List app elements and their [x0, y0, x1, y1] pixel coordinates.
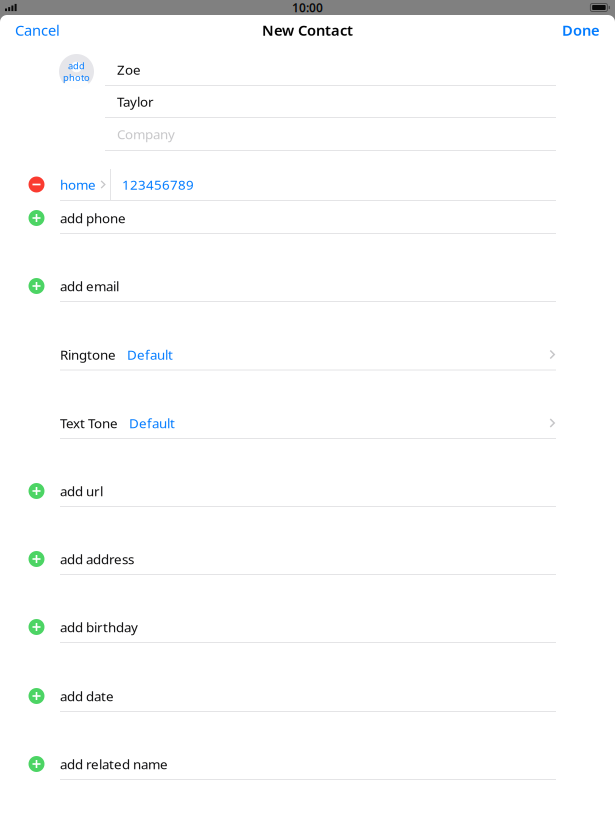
button[interactable]: add date [0, 678, 615, 712]
button[interactable]: Done [558, 13, 604, 47]
staticText: add [68, 59, 85, 72]
staticText: Cancel [15, 20, 60, 40]
staticText: add related name [60, 755, 168, 773]
staticText: photo [63, 71, 90, 84]
staticText: add url [60, 482, 103, 500]
button[interactable]: home [0, 169, 615, 201]
staticText: add email [60, 277, 119, 295]
button[interactable]: add birthday [0, 610, 615, 643]
button[interactable]: add address [0, 542, 615, 575]
staticText: Done [562, 20, 600, 40]
staticText: New Contact [262, 20, 353, 40]
staticText: Default [129, 414, 175, 432]
button[interactable]: Add photo [59, 54, 94, 89]
staticText: 10:00 [292, 0, 323, 15]
button[interactable]: Ringtone [0, 337, 615, 370]
button[interactable]: add url [0, 474, 615, 507]
staticText: Taylor [117, 93, 154, 110]
button[interactable]: add related name [0, 746, 615, 780]
staticText: home [60, 176, 96, 193]
button[interactable]: Text Tone [0, 405, 615, 439]
staticText: Ringtone [60, 346, 116, 363]
button[interactable]: Cancel [11, 13, 64, 47]
staticText: add phone [60, 209, 126, 227]
staticText: add date [60, 687, 114, 705]
staticText: 123456789 [122, 176, 194, 193]
button[interactable]: add phone [0, 201, 615, 234]
staticText: Text Tone [60, 414, 118, 432]
staticText: Default [127, 346, 173, 363]
staticText: Company [117, 125, 175, 143]
staticText: add address [60, 550, 134, 568]
staticText: Zoe [117, 61, 141, 78]
button[interactable]: add email [0, 269, 615, 302]
staticText: add birthday [60, 618, 138, 636]
